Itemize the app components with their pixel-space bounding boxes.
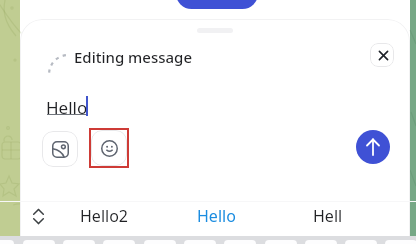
button[interactable]: Key — [63, 240, 95, 244]
button[interactable]: Key — [265, 240, 297, 244]
staticText: Hello — [46, 96, 88, 119]
button[interactable]: Key — [184, 240, 216, 244]
button[interactable]: Expand suggestions — [0, 195, 48, 237]
button[interactable]: Key — [144, 240, 176, 244]
button[interactable]: Key — [0, 240, 14, 244]
button[interactable]: Insert image — [42, 131, 78, 167]
button[interactable]: Key — [345, 240, 377, 244]
button[interactable]: Key — [103, 240, 135, 244]
button[interactable]: Send — [356, 130, 390, 164]
button[interactable]: Hello2 — [48, 195, 160, 237]
button[interactable]: Key — [385, 240, 416, 244]
button[interactable]: Hell — [272, 195, 384, 237]
button[interactable]: Key — [305, 240, 337, 244]
button[interactable]: Key — [224, 240, 256, 244]
button[interactable]: Insert emoji — [89, 128, 129, 168]
button[interactable]: Jump to message — [176, 0, 258, 9]
staticText: Editing message — [74, 47, 192, 67]
staticText: Hello — [197, 205, 236, 227]
button[interactable]: Key — [23, 240, 55, 244]
button[interactable]: Close — [370, 43, 394, 67]
staticText: Hell — [313, 205, 343, 227]
staticText: Hello2 — [80, 205, 128, 227]
button[interactable]: Hello — [160, 195, 272, 237]
